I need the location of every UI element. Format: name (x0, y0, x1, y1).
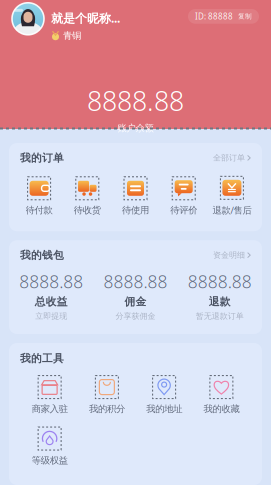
button[interactable]: 我的收藏 (193, 375, 250, 415)
staticText: 8888.88 (87, 83, 184, 118)
staticText: 8888.88 (103, 270, 167, 293)
staticText: 退款/售后 (212, 204, 251, 216)
button[interactable]: ID: 88888 (188, 9, 259, 24)
button[interactable]: 我的地址 (135, 375, 193, 415)
staticText: 我的地址 (146, 403, 182, 415)
staticText: 等级权益 (32, 455, 68, 466)
button[interactable]: 待评价 (160, 176, 208, 216)
staticText: 待收货 (74, 204, 101, 216)
button[interactable]: 资金明细 (213, 248, 251, 262)
button[interactable]: 退款/售后 (208, 176, 256, 216)
staticText: 全部订单 (213, 153, 245, 163)
staticText: 总收益 (35, 295, 68, 308)
staticText: 我的积分 (89, 403, 125, 415)
staticText: 账户余额 (117, 122, 153, 134)
staticText: 待使用 (122, 204, 149, 216)
staticText: 我的工具 (20, 352, 64, 365)
staticText: 我的钱包 (20, 249, 64, 262)
staticText: 待评价 (170, 204, 197, 216)
button[interactable]: 8888.88 (178, 270, 262, 321)
button[interactable]: 我的积分 (78, 375, 135, 415)
button[interactable]: 待付款 (15, 176, 63, 216)
staticText: 我的收藏 (203, 403, 239, 415)
button[interactable]: 8888.88 (9, 270, 93, 321)
staticText: 青铜 (63, 30, 81, 41)
button[interactable]: 待收货 (63, 176, 111, 216)
button[interactable]: 8888.88 (93, 270, 178, 321)
staticText: ID: 88888 (195, 11, 233, 22)
staticText: 分享获佣金 (115, 311, 155, 321)
staticText: 佣金 (124, 295, 146, 308)
button[interactable]: 待使用 (111, 176, 160, 216)
staticText: 复制 (238, 12, 252, 20)
staticText: 待付款 (26, 204, 53, 216)
button[interactable]: 等级权益 (21, 427, 78, 466)
staticText: 8888.88 (188, 270, 252, 293)
staticText: 我的订单 (20, 151, 64, 164)
staticText: 退款 (209, 295, 231, 308)
button[interactable]: 全部订单 (213, 151, 251, 165)
staticText: 资金明细 (213, 250, 245, 260)
button[interactable]: 商家入驻 (21, 375, 78, 415)
staticText: 商家入驻 (32, 403, 68, 415)
staticText: 8888.88 (19, 270, 83, 293)
staticText: 就是个昵称... (51, 10, 120, 26)
staticText: 立即提现 (35, 311, 67, 321)
staticText: 暂无退款订单 (196, 311, 244, 321)
